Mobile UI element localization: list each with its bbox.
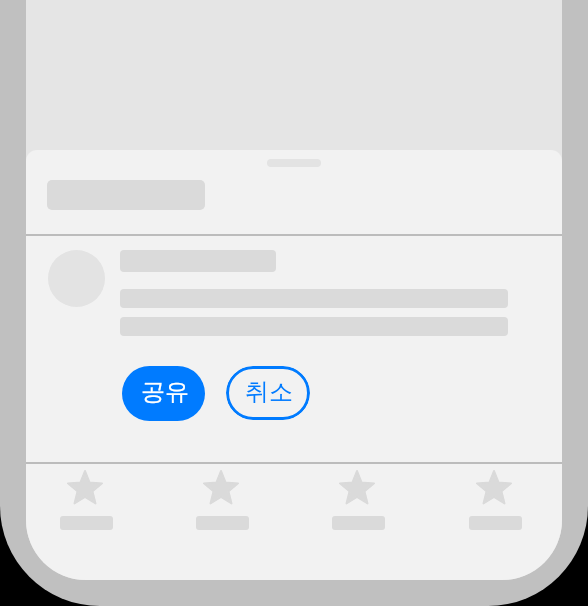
staticText: 공유 xyxy=(141,377,189,407)
button[interactable]: Search xyxy=(154,464,290,580)
staticText: 취소 xyxy=(245,377,293,407)
button[interactable]: 공유 xyxy=(122,366,205,421)
button[interactable]: 취소 xyxy=(226,366,310,420)
button[interactable]: Favorites xyxy=(290,464,426,580)
button[interactable]: Home xyxy=(26,464,154,580)
button[interactable]: Profile xyxy=(427,464,562,580)
